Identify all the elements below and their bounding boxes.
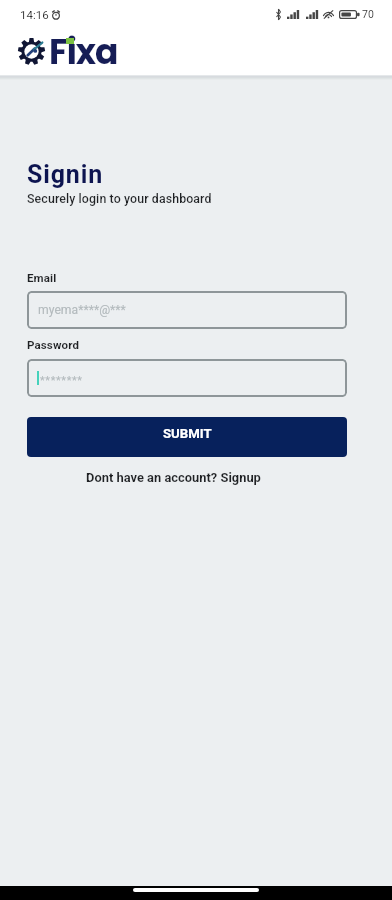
staticText: 70 [362,8,374,20]
staticText: myema****@*** [38,303,126,317]
staticText: ******** [40,374,83,387]
button[interactable]: SUBMIT [27,417,347,457]
staticText: Signin [27,160,104,189]
button[interactable]: Dont have an account? Signup [86,470,261,485]
staticText: SUBMIT [163,426,212,441]
staticText: Password [27,338,80,352]
button[interactable]: Fixa home [18,38,87,86]
button[interactable]: ******** [27,359,347,397]
staticText: 14:16 [20,8,49,21]
staticText: Fixa [49,28,118,76]
button[interactable]: myema****@*** [27,291,347,329]
staticText: Securely login to your dashboard [27,191,212,206]
staticText: Email [27,271,57,285]
